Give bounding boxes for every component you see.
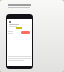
button[interactable] xyxy=(21,31,30,34)
